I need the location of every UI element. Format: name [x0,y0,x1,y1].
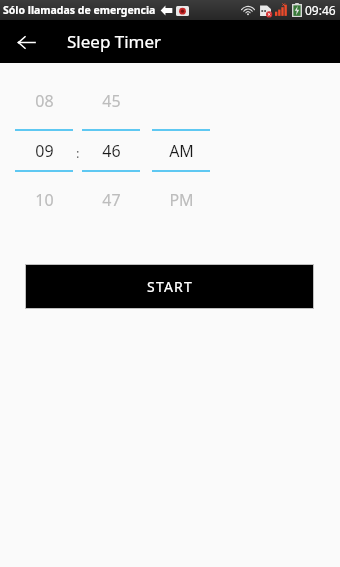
staticText: 09 [35,140,54,162]
staticText: AM [169,140,194,162]
staticText: 45 [102,90,121,112]
staticText: 10 [35,189,54,211]
staticText: 46 [102,140,121,162]
button[interactable]: Back [10,26,42,58]
staticText: Sólo llamadas de emergencia [3,3,156,17]
staticText: Sleep Timer [67,30,162,53]
staticText: 08 [35,90,54,112]
staticText: PM [169,189,194,211]
button[interactable]: START [25,264,314,309]
staticText: START [147,277,193,296]
button[interactable]: 08 [15,80,73,225]
button[interactable]: AM [152,80,210,225]
staticText: : [76,144,80,162]
button[interactable]: 45 [82,80,140,225]
staticText: 47 [102,189,121,211]
staticText: 09:46 [305,2,336,18]
